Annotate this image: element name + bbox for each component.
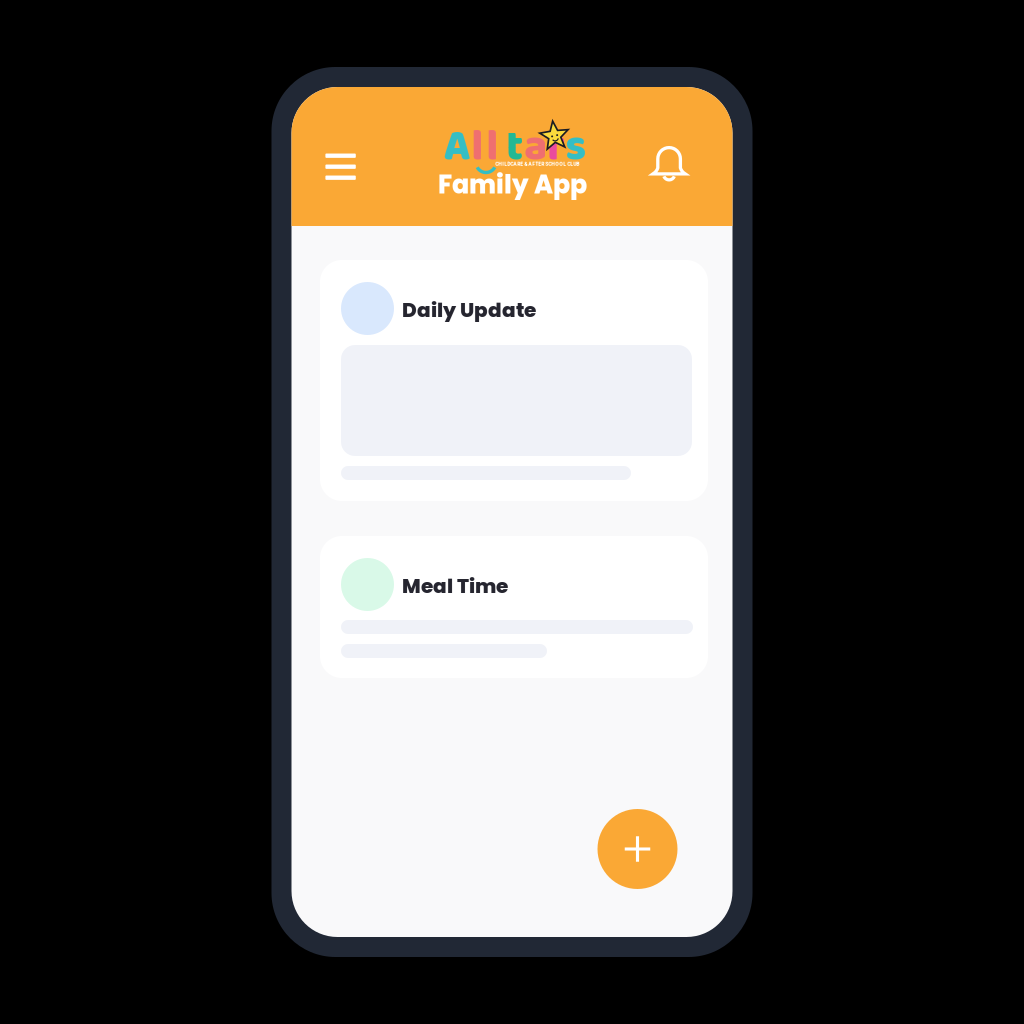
button[interactable]: Notifications — [647, 145, 691, 189]
staticText: l — [471, 113, 483, 181]
button[interactable]: Add — [597, 809, 677, 889]
staticText: t — [506, 113, 523, 181]
staticText: Daily Update — [402, 296, 536, 324]
staticText: CHILDCARE & AFTER SCHOOL CLUB — [495, 160, 579, 167]
staticText: Family App — [438, 167, 587, 202]
staticText: l — [486, 113, 498, 181]
button[interactable]: Menu — [319, 145, 363, 189]
staticText: A — [444, 113, 471, 181]
staticText: r — [547, 113, 565, 181]
staticText: a — [524, 113, 547, 181]
staticText: Meal Time — [402, 572, 508, 600]
staticText: s — [565, 113, 586, 181]
